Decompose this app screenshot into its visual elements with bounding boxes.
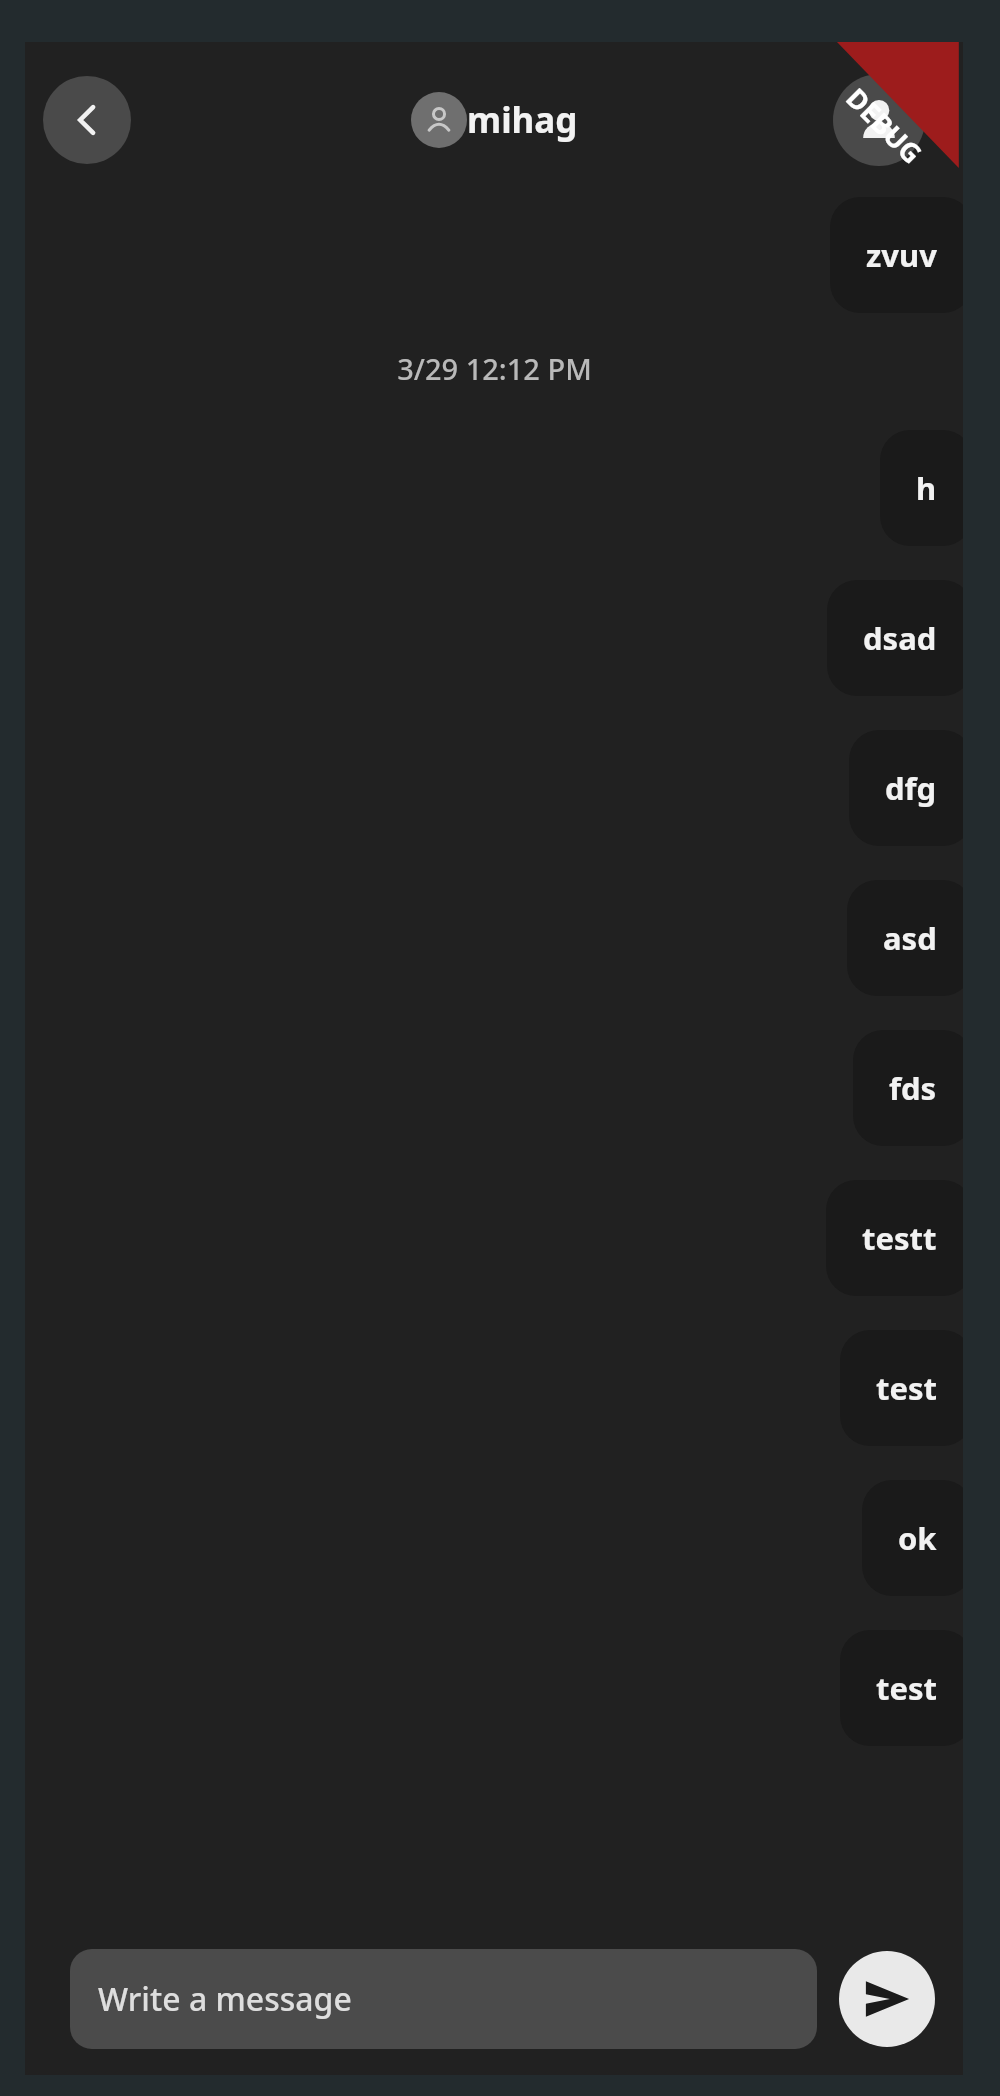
staticText: DEBUG (838, 79, 930, 171)
button[interactable]: Write a message (70, 1949, 817, 2049)
staticText: zvuv (866, 234, 937, 276)
staticText: h (916, 467, 937, 509)
staticText: dsad (863, 617, 937, 659)
button[interactable]: testt (826, 1180, 963, 1296)
button[interactable]: asd (847, 880, 963, 996)
button[interactable]: fds (853, 1030, 963, 1146)
button[interactable]: dsad (827, 580, 963, 696)
button[interactable]: test (840, 1330, 963, 1446)
staticText: asd (883, 917, 937, 959)
button[interactable]: Send (839, 1951, 935, 2047)
staticText: test (876, 1367, 937, 1409)
button[interactable]: h (880, 430, 963, 546)
button[interactable]: test (840, 1630, 963, 1746)
staticText: 3/29 12:12 PM (397, 349, 592, 388)
button[interactable]: mihag (411, 92, 578, 148)
staticText: Write a message (98, 1977, 352, 2021)
button[interactable]: zvuv (830, 197, 963, 313)
staticText: ok (898, 1517, 937, 1559)
button[interactable]: Back (43, 76, 131, 164)
staticText: dfg (885, 767, 937, 809)
button[interactable]: ok (862, 1480, 963, 1596)
staticText: testt (862, 1217, 937, 1259)
staticText: test (876, 1667, 937, 1709)
button[interactable]: Profile (833, 74, 925, 166)
staticText: fds (889, 1067, 937, 1109)
staticText: mihag (467, 96, 578, 144)
button[interactable]: dfg (849, 730, 963, 846)
